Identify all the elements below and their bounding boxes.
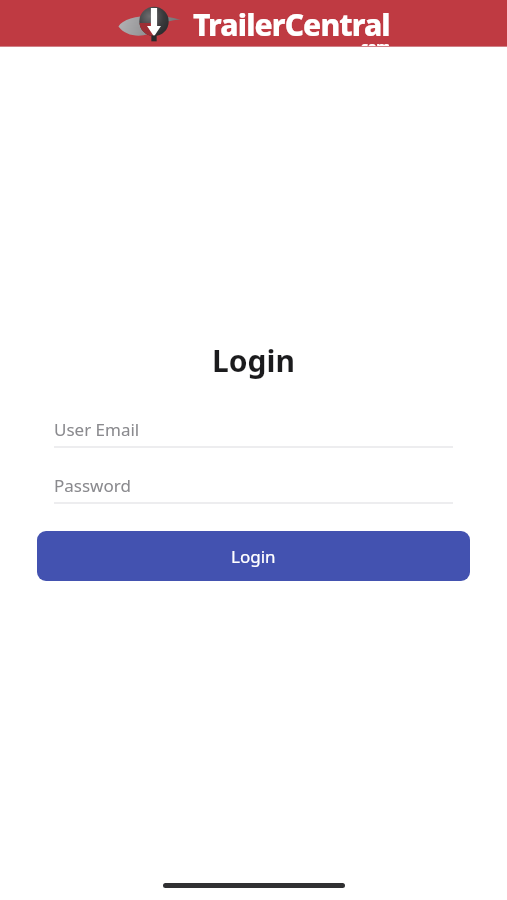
button[interactable]: User Email	[54, 412, 453, 448]
button[interactable]: Password	[54, 468, 453, 504]
staticText: TrailerCentral	[193, 4, 390, 45]
staticText: Login	[231, 545, 276, 568]
staticText: Password	[54, 474, 131, 497]
staticText: Login	[212, 340, 295, 381]
button[interactable]: Login	[37, 531, 470, 581]
staticText: User Email	[54, 418, 140, 441]
other: TrailerCentral.com	[117, 3, 390, 45]
staticText: .com	[357, 37, 390, 56]
